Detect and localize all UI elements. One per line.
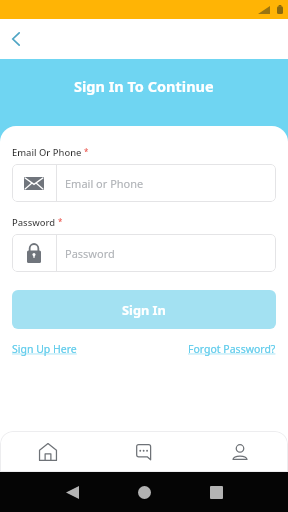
button[interactable]: Back [2,25,30,53]
staticText: Password [65,246,115,261]
button[interactable]: Forgot Password? [188,342,276,356]
button[interactable]: Messages [124,432,164,472]
button[interactable]: Profile [220,432,260,472]
staticText: * [84,146,89,157]
button[interactable]: Home [28,432,68,472]
staticText: Email Or Phone [12,146,82,159]
button[interactable]: Back [54,474,90,510]
staticText: Sign In To Continue [74,76,214,96]
staticText: Password [12,216,56,229]
staticText: Sign Up Here [12,342,77,356]
staticText: Email or Phone [65,176,144,191]
staticText: Sign In [122,301,166,318]
button[interactable]: Password [12,234,276,272]
staticText: * [58,216,63,227]
button[interactable]: Sign In [12,290,276,329]
button[interactable]: Home [126,474,162,510]
button[interactable]: Recent apps [198,474,234,510]
staticText: Forgot Password? [188,342,276,356]
button[interactable]: Email or Phone [12,164,276,202]
button[interactable]: Sign Up Here [12,342,77,356]
